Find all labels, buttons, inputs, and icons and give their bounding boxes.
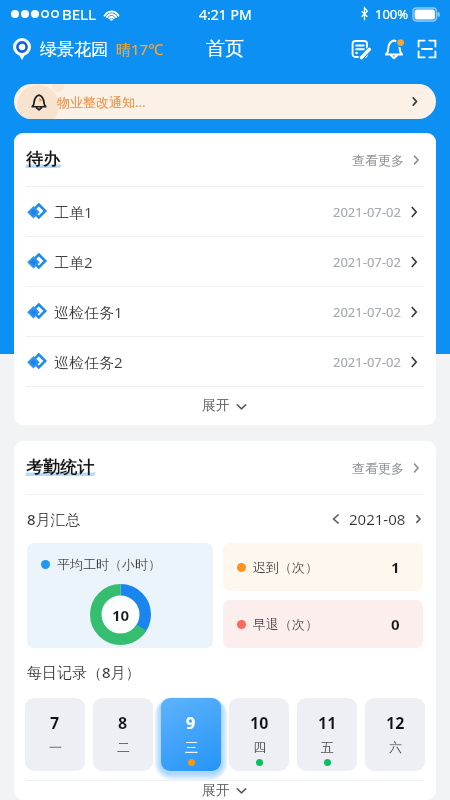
staticText: BELL — [62, 4, 96, 24]
button[interactable]: 9 — [161, 698, 221, 771]
staticText: 11 — [318, 712, 337, 734]
staticText: 三 — [185, 739, 198, 755]
staticText: 9 — [186, 712, 196, 734]
staticText: 7 — [50, 712, 60, 734]
staticText: 物业整改通知... — [57, 93, 146, 111]
button[interactable]: Next month — [411, 511, 427, 527]
button[interactable]: 待办 — [14, 133, 436, 186]
staticText: 展开 — [202, 782, 230, 800]
staticText: 四 — [253, 739, 266, 755]
button[interactable]: 展开 — [14, 387, 436, 425]
staticText: 12 — [386, 712, 405, 734]
button[interactable]: 展开 — [14, 781, 436, 800]
staticText: 10 — [112, 605, 130, 625]
staticText: 查看更多 — [352, 460, 404, 476]
button[interactable]: 绿景花园 — [13, 38, 164, 60]
staticText: 2021-07-02 — [333, 303, 401, 321]
staticText: 待办 — [26, 149, 60, 170]
staticText: 工单2 — [54, 252, 93, 272]
staticText: 平均工时（小时） — [57, 556, 161, 572]
staticText: 考勤统计 — [26, 457, 94, 478]
staticText: 一 — [49, 739, 62, 755]
button[interactable]: 12 — [365, 698, 425, 771]
button[interactable]: Notes — [347, 35, 375, 63]
button[interactable]: 7 — [25, 698, 85, 771]
staticText: 2021-08 — [349, 509, 406, 529]
staticText: 8月汇总 — [27, 509, 81, 529]
button[interactable]: 工单2 — [14, 237, 436, 286]
staticText: 迟到（次） — [253, 559, 318, 575]
staticText: 8 — [118, 712, 128, 734]
staticText: 2021-07-02 — [333, 253, 401, 271]
staticText: 每日记录（8月） — [27, 662, 141, 682]
staticText: 4:21 PM — [199, 5, 252, 24]
staticText: 工单1 — [54, 202, 93, 222]
staticText: 巡检任务2 — [54, 352, 123, 372]
button[interactable]: Scan — [413, 35, 441, 63]
staticText: 五 — [321, 739, 334, 755]
button[interactable]: 8 — [93, 698, 153, 771]
staticText: 二 — [117, 739, 130, 755]
staticText: 100% — [375, 5, 409, 23]
staticText: 1 — [391, 557, 400, 577]
staticText: 早退（次） — [253, 616, 318, 632]
button[interactable]: 巡检任务2 — [14, 337, 436, 386]
staticText: 查看更多 — [352, 152, 404, 168]
button[interactable]: Notifications — [380, 35, 408, 63]
staticText: 0 — [391, 614, 400, 634]
button[interactable]: 10 — [229, 698, 289, 771]
staticText: 首页 — [206, 37, 244, 61]
staticText: 2021-07-02 — [333, 203, 401, 221]
staticText: 六 — [389, 739, 402, 755]
staticText: 晴17℃ — [116, 39, 164, 59]
button[interactable]: 物业整改通知... — [14, 84, 436, 119]
button[interactable]: 11 — [297, 698, 357, 771]
button[interactable]: Previous month — [328, 511, 344, 527]
staticText: 2021-07-02 — [333, 353, 401, 371]
staticText: 10 — [250, 712, 269, 734]
button[interactable]: 巡检任务1 — [14, 287, 436, 336]
staticText: 绿景花园 — [40, 39, 108, 60]
button[interactable]: 考勤统计 — [14, 441, 436, 494]
staticText: 展开 — [202, 397, 230, 415]
staticText: 巡检任务1 — [54, 302, 123, 322]
button[interactable]: 工单1 — [14, 187, 436, 236]
